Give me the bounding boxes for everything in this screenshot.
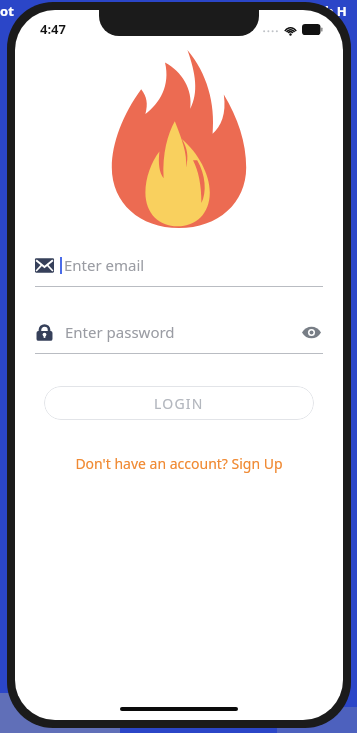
staticText: ot	[0, 2, 14, 20]
staticText: Don't have an account? Sign Up	[75, 454, 283, 473]
staticText: 4:47	[40, 20, 66, 38]
staticText: Enter email	[64, 255, 145, 275]
other: Battery	[302, 24, 323, 35]
button[interactable]: Password	[35, 317, 323, 354]
other: Wi-Fi	[284, 25, 297, 35]
button[interactable]: Email	[35, 250, 323, 287]
button[interactable]: LOGIN	[44, 386, 314, 420]
staticText: h H	[325, 2, 347, 20]
button[interactable]: Don't have an account? Sign Up	[67, 450, 291, 477]
other: Password	[35, 323, 54, 342]
staticText: Enter password	[65, 322, 175, 342]
other: Email	[35, 256, 54, 275]
staticText: LOGIN	[154, 394, 204, 413]
button[interactable]: Show password	[300, 324, 323, 341]
